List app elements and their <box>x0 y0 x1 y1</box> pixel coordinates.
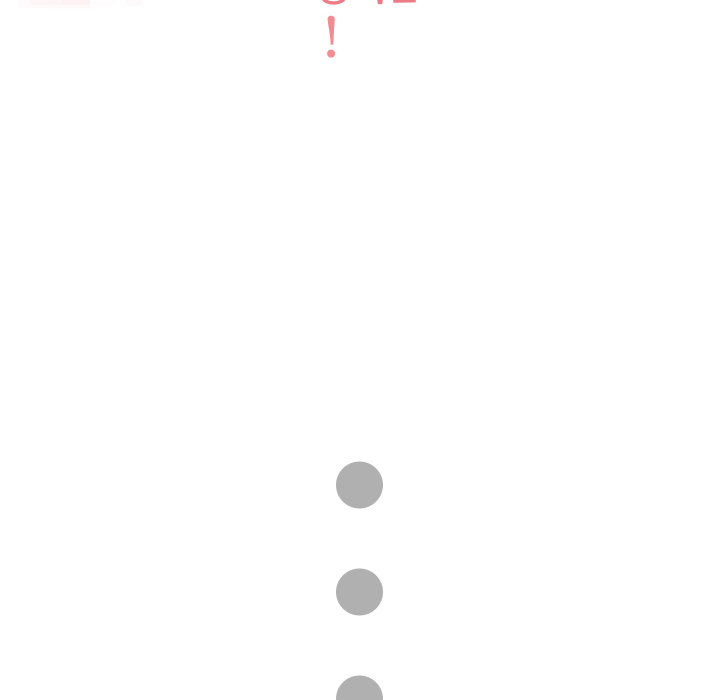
button[interactable]: Comic page. Tap to show reader controls <box>0 0 720 700</box>
